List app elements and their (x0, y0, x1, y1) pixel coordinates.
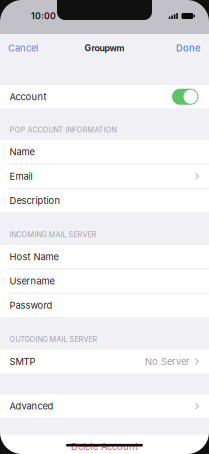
button[interactable]: Done (176, 42, 200, 54)
staticText: No Server (145, 356, 190, 367)
button[interactable]: Description (0, 189, 209, 212)
staticText: 10:00 (31, 11, 56, 21)
button[interactable]: Password (0, 294, 209, 317)
staticText: OUTGOING MAIL SERVER (9, 335, 97, 344)
staticText: Cancel (8, 42, 38, 54)
button[interactable]: Host Name (0, 245, 209, 268)
staticText: Email (9, 171, 32, 182)
button[interactable]: Account (0, 85, 209, 108)
staticText: Password (9, 300, 52, 311)
staticText: Delete Account (71, 441, 138, 452)
staticText: Account (9, 91, 46, 102)
staticText: POP ACCOUNT INFORMATION (9, 125, 116, 134)
button[interactable]: Delete Account (0, 435, 209, 454)
staticText: Name (9, 146, 34, 158)
button[interactable]: Advanced (0, 394, 209, 418)
button[interactable]: Username (0, 269, 209, 293)
staticText: Advanced (9, 400, 53, 412)
staticText: INCOMING MAIL SERVER (9, 230, 96, 239)
staticText: Groupwm (84, 43, 124, 53)
staticText: Host Name (9, 251, 58, 262)
button[interactable]: Email (0, 164, 209, 188)
staticText: Done (176, 42, 200, 54)
button[interactable]: SMTP (0, 350, 209, 373)
staticText: SMTP (9, 356, 35, 367)
button[interactable]: Name (0, 140, 209, 164)
button[interactable]: Cancel (8, 42, 38, 54)
staticText: Username (9, 275, 54, 287)
staticText: Description (9, 195, 60, 206)
